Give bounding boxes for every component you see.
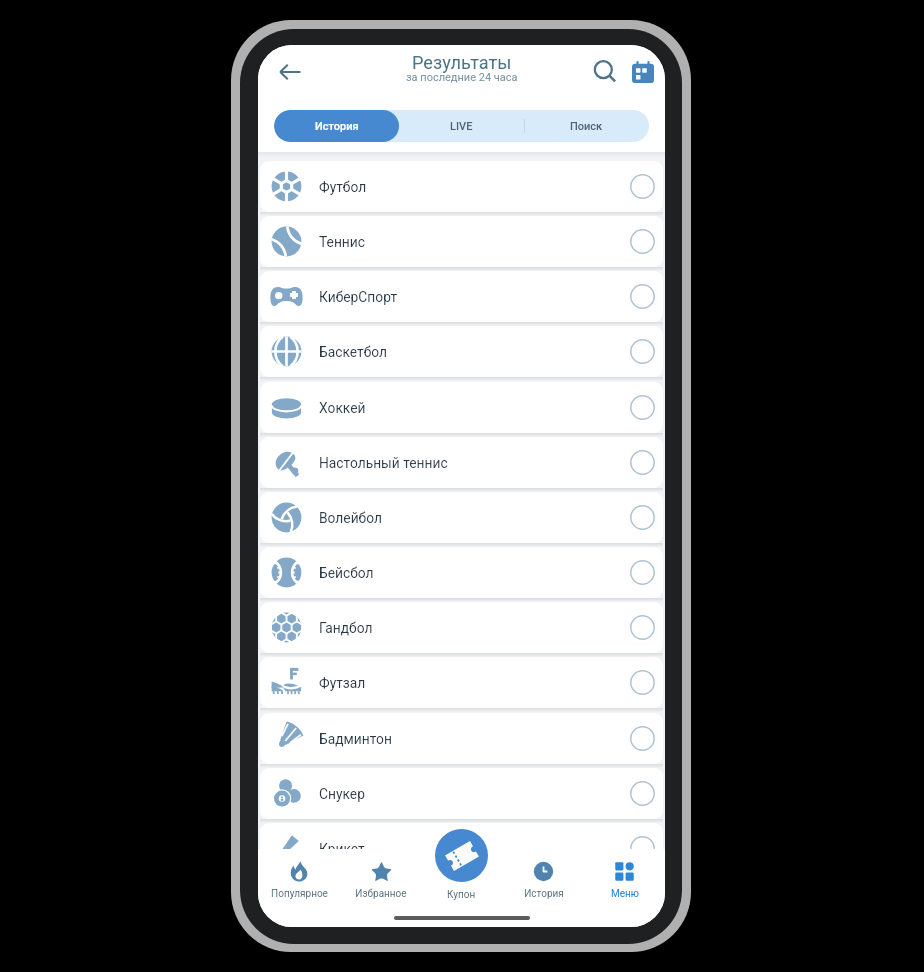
button[interactable]: Гандбол [260, 602, 663, 653]
button[interactable]: Избранное [340, 849, 422, 927]
staticText: История [315, 120, 359, 133]
button[interactable]: История [503, 849, 584, 927]
button[interactable]: Search [585, 52, 625, 92]
button[interactable]: LIVE [399, 110, 524, 142]
staticText: Крикет [319, 841, 365, 849]
staticText: Теннис [319, 234, 365, 250]
button[interactable]: Настольный теннис [260, 437, 663, 488]
button[interactable]: Поиск [524, 110, 649, 142]
button[interactable]: Меню [584, 849, 665, 927]
button[interactable]: Популярное [258, 849, 340, 927]
staticText: Футбол [319, 179, 367, 195]
button[interactable]: Баскетбол [260, 326, 663, 377]
button[interactable]: Снукер [260, 768, 663, 819]
button[interactable]: История [274, 110, 399, 142]
button[interactable]: Хоккей [260, 382, 663, 433]
staticText: Бейсбол [319, 565, 374, 581]
staticText: Хоккей [319, 400, 366, 416]
staticText: Футзал [319, 675, 366, 691]
staticText: Купон [447, 889, 476, 901]
staticText: Волейбол [319, 510, 382, 526]
staticText: КиберСпорт [319, 289, 398, 305]
staticText: История [524, 888, 564, 900]
button[interactable]: Крикет [260, 823, 663, 849]
button[interactable]: Бейсбол [260, 547, 663, 598]
button[interactable]: Теннис [260, 216, 663, 267]
button[interactable]: Calendar [623, 52, 663, 92]
button[interactable]: Футзал [260, 657, 663, 708]
staticText: Популярное [271, 888, 328, 900]
button[interactable]: КиберСпорт [260, 271, 663, 322]
staticText: Поиск [570, 120, 603, 133]
staticText: LIVE [450, 120, 473, 133]
staticText: за последние 24 часа [406, 71, 518, 84]
staticText: Меню [611, 888, 639, 900]
staticText: Избранное [355, 888, 407, 900]
staticText: Результаты [412, 52, 512, 73]
button[interactable]: Бадминтон [260, 713, 663, 764]
staticText: Баскетбол [319, 344, 388, 360]
staticText: Настольный теннис [319, 455, 448, 471]
button[interactable]: Купон [435, 829, 488, 882]
button[interactable]: Back [270, 52, 310, 92]
staticText: Снукер [319, 786, 365, 802]
staticText: Гандбол [319, 620, 373, 636]
staticText: Бадминтон [319, 731, 392, 747]
button[interactable]: Волейбол [260, 492, 663, 543]
button[interactable]: Футбол [260, 161, 663, 212]
